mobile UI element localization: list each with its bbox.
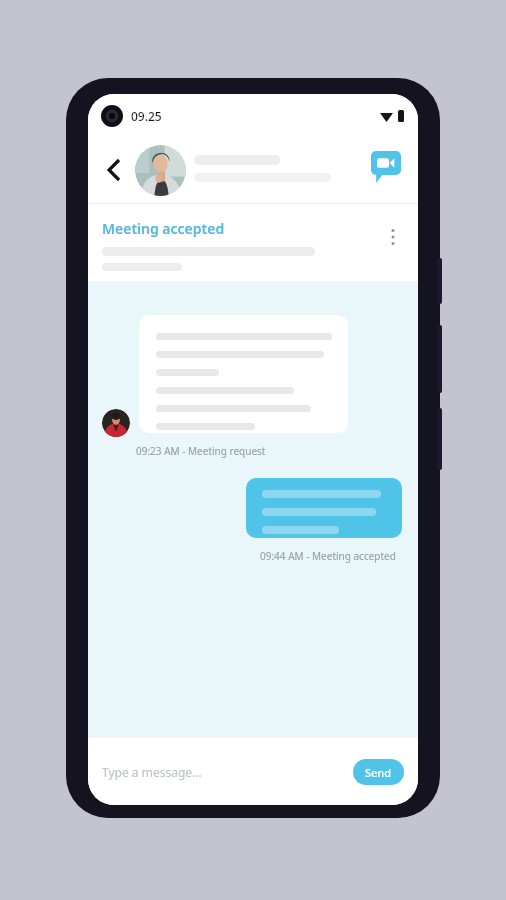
button[interactable]: More options — [376, 220, 410, 254]
button[interactable] — [139, 315, 348, 433]
button[interactable]: Send — [353, 759, 404, 785]
staticText: 09.25 — [131, 108, 162, 124]
button[interactable] — [246, 478, 402, 538]
button[interactable] — [102, 409, 130, 437]
staticText: Meeting accepted — [102, 219, 225, 238]
staticText: Type a message... — [102, 764, 202, 780]
staticText: 09:23 AM - Meeting request — [136, 444, 266, 458]
staticText: Send — [365, 765, 392, 780]
button[interactable]: Type a message... — [102, 755, 302, 789]
button[interactable]: Back — [96, 152, 132, 188]
button[interactable]: Video call — [366, 147, 406, 187]
button[interactable] — [135, 145, 186, 196]
staticText: 09:44 AM - Meeting accepted — [260, 549, 396, 563]
